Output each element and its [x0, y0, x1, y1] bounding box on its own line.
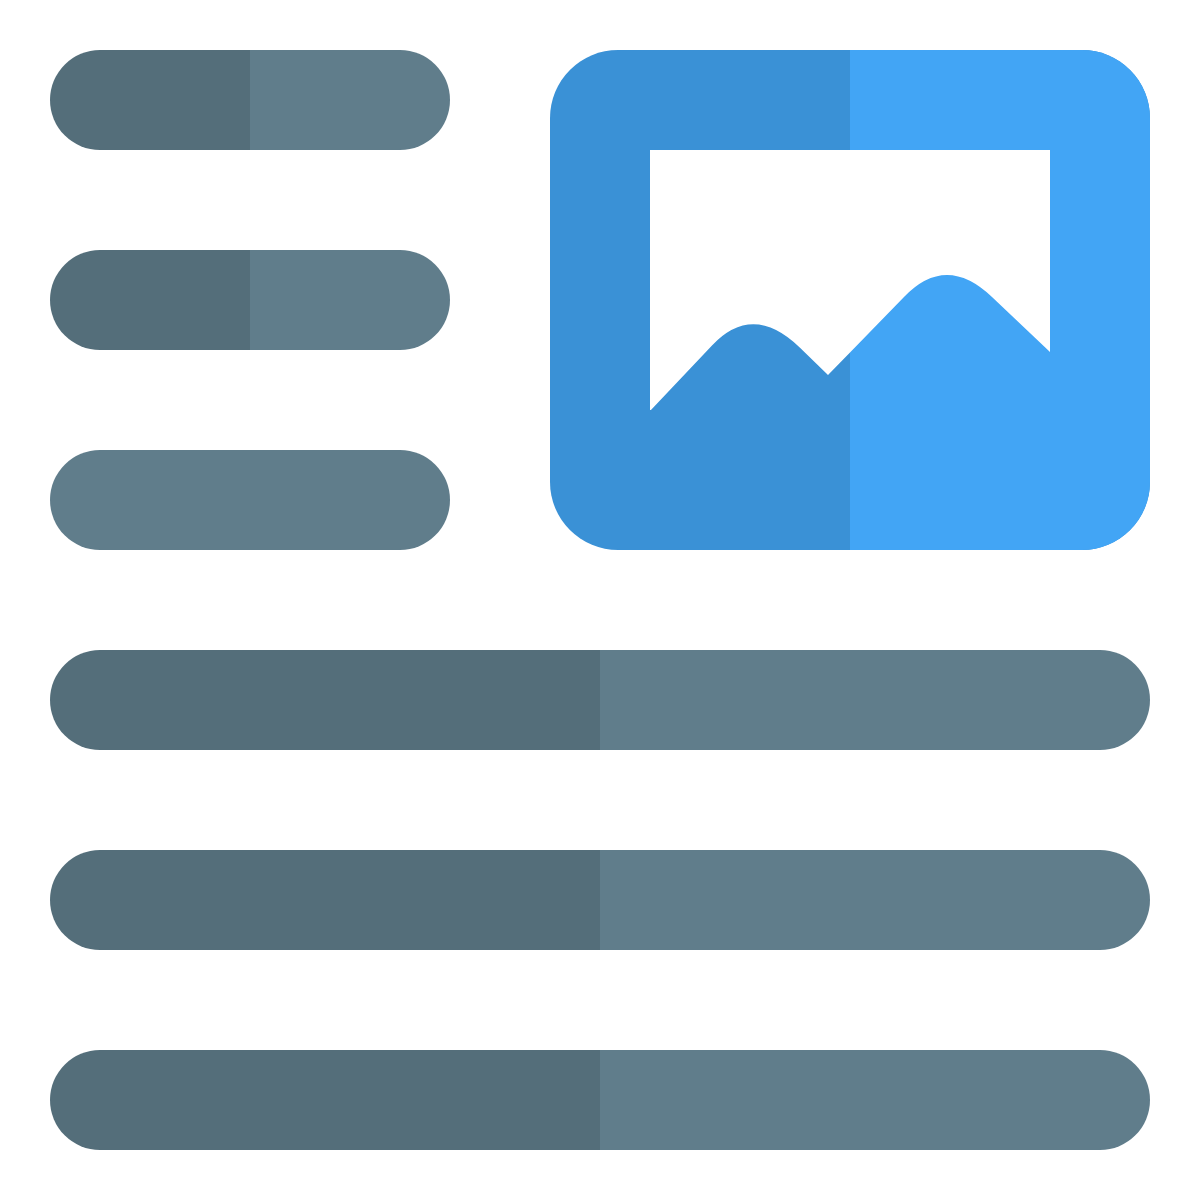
button[interactable]: Body line 3	[50, 1050, 1150, 1150]
button[interactable]: Article image	[550, 50, 1150, 550]
button[interactable]: Body line 2	[50, 850, 1150, 950]
button[interactable]: Headline line 2	[50, 250, 450, 350]
button[interactable]: Headline line 1	[50, 50, 450, 150]
button[interactable]: Body line 1	[50, 650, 1150, 750]
button[interactable]: Headline line 3	[50, 450, 450, 550]
